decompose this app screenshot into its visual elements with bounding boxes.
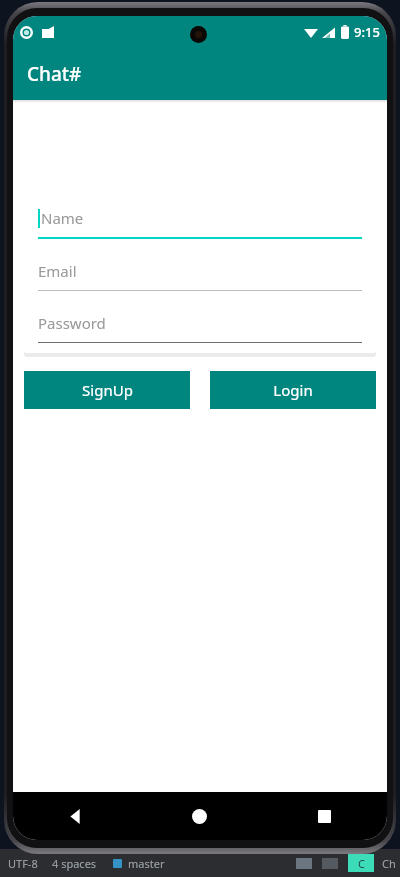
button[interactable]: Email (38, 261, 362, 291)
button[interactable]: Name (38, 208, 362, 239)
staticText: Ch (382, 856, 396, 871)
staticText: Email (38, 261, 77, 281)
staticText: UTF-8 (8, 856, 38, 871)
staticText: Chat# (27, 61, 82, 87)
button[interactable]: Password (38, 313, 362, 343)
staticText: Password (38, 313, 106, 333)
staticText: C (358, 856, 365, 871)
staticText: 4 spaces (52, 856, 97, 871)
staticText: Name (41, 208, 84, 228)
staticText: Login (273, 380, 313, 400)
button[interactable]: Back (13, 792, 137, 840)
staticText: master (128, 856, 165, 871)
button[interactable]: Login (210, 371, 376, 409)
button[interactable]: Home (137, 792, 262, 840)
button[interactable]: SignUp (24, 371, 190, 409)
button[interactable]: Recent apps (262, 792, 387, 840)
staticText: 9:15 (354, 23, 380, 41)
staticText: SignUp (82, 380, 133, 400)
